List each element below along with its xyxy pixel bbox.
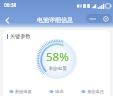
button[interactable]: Back to app [86,14,99,23]
staticText: 剩余电量 [15,89,32,94]
button[interactable]: Back [2,15,12,25]
staticText: 最佳电压 [87,89,104,94]
staticText: 06:38 [4,2,17,9]
staticText: 电池详细信息 [37,16,73,24]
staticText: 关键参数 [10,33,31,40]
staticText: 58% [46,49,69,65]
staticText: 剩余电量 [49,66,67,72]
button[interactable]: 剩余电量 [3,86,38,96]
button[interactable]: More options [99,14,112,23]
button[interactable]: 电流 [38,86,74,96]
button[interactable]: 最佳电压 [74,86,110,96]
staticText: 电流 [55,89,64,94]
